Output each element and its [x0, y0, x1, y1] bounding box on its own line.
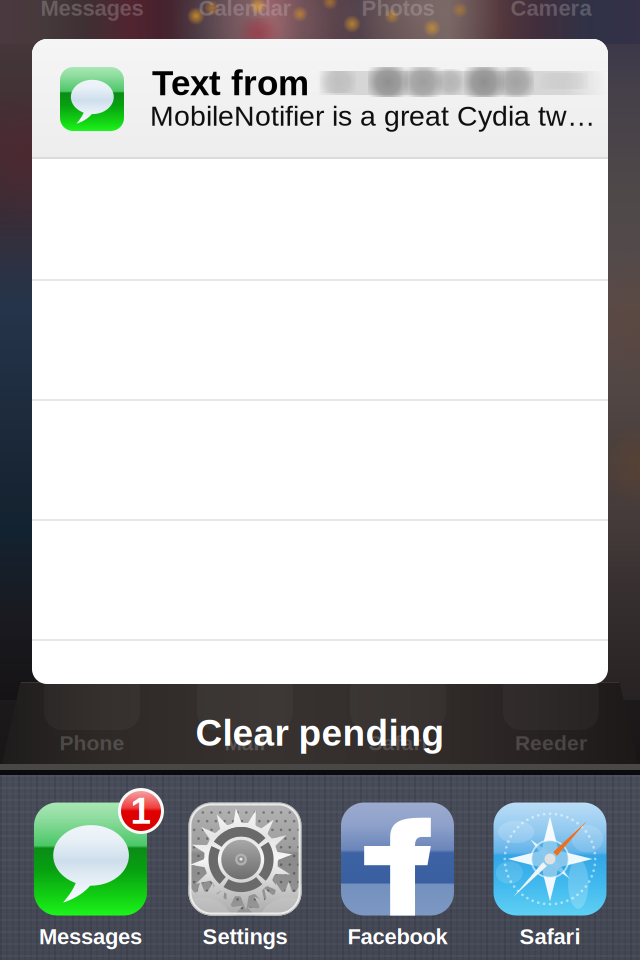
staticText: 1 [130, 790, 151, 832]
staticText: Photos [361, 0, 434, 20]
staticText: Text from [152, 63, 309, 102]
staticText: Safari [519, 924, 580, 949]
staticText: Reeder [515, 731, 587, 755]
staticText: Facebook [347, 924, 447, 949]
staticText: Calendar [198, 0, 291, 20]
staticText: Mail [224, 731, 265, 755]
button[interactable]: Clear pending [0, 713, 640, 753]
staticText: Settings [202, 924, 287, 949]
button[interactable]: Facebook [321, 802, 473, 950]
staticText: Safari [368, 731, 427, 755]
button[interactable]: Messages [14, 802, 166, 950]
staticText: Messages [39, 924, 142, 949]
staticText: Clear pending [195, 712, 444, 754]
staticText: Messages [40, 0, 143, 20]
button[interactable]: Settings [169, 802, 321, 950]
staticText: MobileNotifier is a great Cydia tw… [150, 100, 595, 132]
staticText: Phone [59, 731, 124, 755]
staticText: Camera [510, 0, 591, 20]
button[interactable]: Safari [474, 802, 626, 950]
